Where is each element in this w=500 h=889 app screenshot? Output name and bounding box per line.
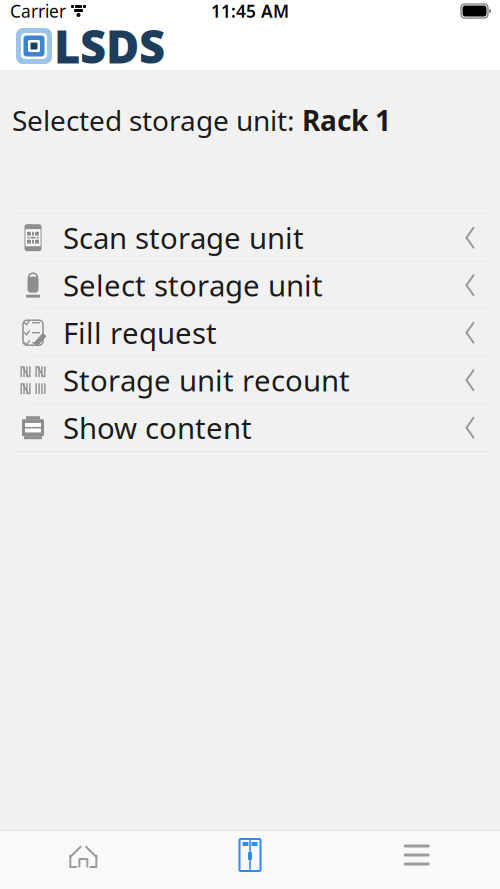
staticText: LSDS xyxy=(54,16,165,76)
staticText: Fill request xyxy=(63,313,217,352)
staticText: Select storage unit xyxy=(63,266,323,305)
staticText: 11:45 AM xyxy=(211,0,289,22)
button[interactable]: Scan storage unit xyxy=(0,214,500,261)
staticText: Selected storage unit: xyxy=(12,101,302,139)
staticText: Show content xyxy=(63,408,252,447)
button[interactable]: Storage unit recount xyxy=(0,357,500,404)
button[interactable]: Home xyxy=(0,831,167,879)
staticText: Rack 1 xyxy=(302,101,391,139)
button[interactable]: Select storage unit xyxy=(0,262,500,309)
button[interactable]: More xyxy=(333,831,500,879)
staticText: Storage unit recount xyxy=(63,361,350,400)
button[interactable]: Show content xyxy=(0,404,500,451)
staticText: Scan storage unit xyxy=(63,218,304,257)
staticText: Carrier xyxy=(10,0,66,22)
button[interactable]: Fill request xyxy=(0,309,500,356)
button[interactable]: Storage units xyxy=(167,831,333,879)
